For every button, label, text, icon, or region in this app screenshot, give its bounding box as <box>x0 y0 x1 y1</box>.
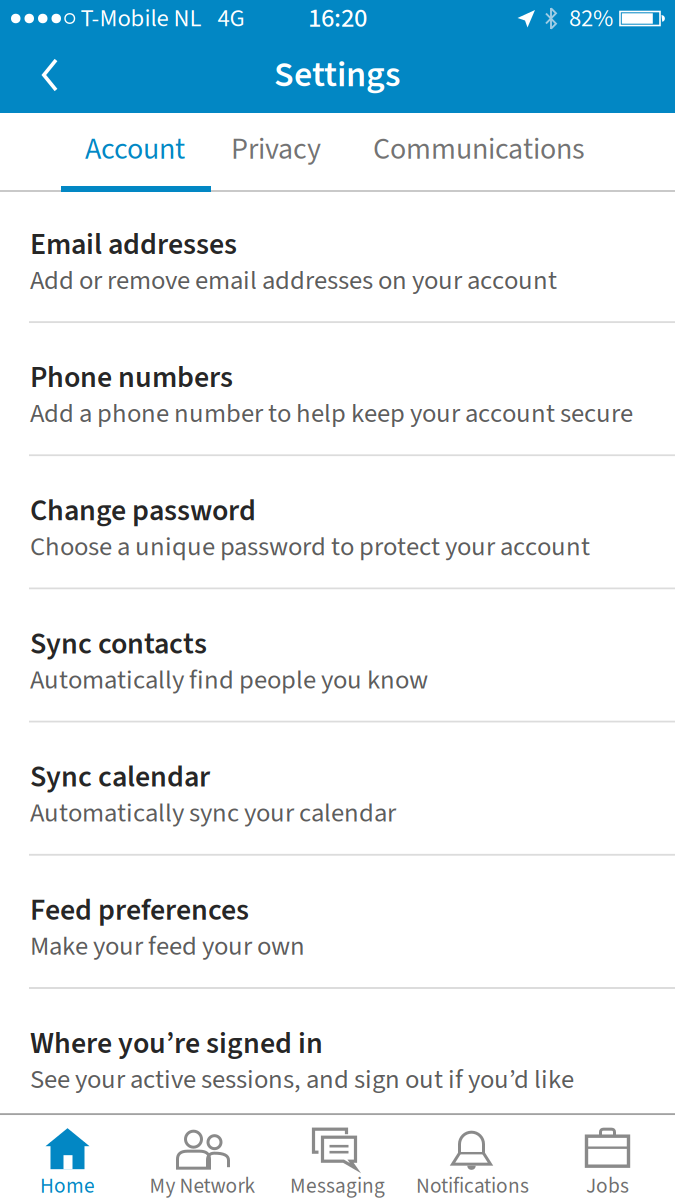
staticText: Messaging <box>290 1173 385 1199</box>
staticText: Where you’re signed in <box>30 1026 323 1061</box>
button[interactable]: Sync calendar <box>0 723 675 854</box>
button[interactable]: Feed preferences <box>0 856 675 987</box>
button[interactable]: Jobs <box>540 1127 675 1199</box>
button[interactable]: Phone numbers <box>0 323 675 454</box>
staticText: Add a phone number to help keep your acc… <box>30 398 633 429</box>
staticText: Email addresses <box>30 227 237 262</box>
button[interactable]: Sync contacts <box>0 589 675 721</box>
staticText: Feed preferences <box>30 893 249 928</box>
staticText: 82% <box>569 1 613 36</box>
button[interactable]: Account <box>0 128 185 171</box>
staticText: Sync contacts <box>30 626 207 661</box>
staticText: Settings <box>274 49 401 101</box>
staticText: Choose a unique password to protect your… <box>30 531 590 562</box>
staticText: Home <box>40 1173 95 1199</box>
button[interactable]: Email addresses <box>0 192 675 321</box>
staticText: Phone numbers <box>30 360 233 395</box>
button[interactable]: Messaging <box>270 1127 405 1199</box>
button[interactable]: My Network <box>135 1127 270 1199</box>
button[interactable]: Change password <box>0 456 675 587</box>
button[interactable]: Privacy <box>185 128 321 171</box>
staticText: Communications <box>373 128 585 171</box>
staticText: Automatically find people you know <box>30 664 428 696</box>
staticText: My Network <box>149 1173 255 1199</box>
button[interactable]: Notifications <box>405 1127 540 1199</box>
staticText: Jobs <box>586 1173 629 1199</box>
button[interactable]: Home <box>0 1127 135 1199</box>
staticText: See your active sessions, and sign out i… <box>30 1064 574 1095</box>
staticText: Make your feed your own <box>30 931 305 962</box>
staticText: Add or remove email addresses on your ac… <box>30 265 557 296</box>
button[interactable]: Back <box>0 38 58 112</box>
staticText: 16:20 <box>308 0 367 37</box>
staticText: Notifications <box>416 1173 529 1199</box>
staticText: Sync calendar <box>30 760 210 795</box>
staticText: Automatically sync your calendar <box>30 798 396 829</box>
staticText: 4G <box>217 1 244 36</box>
button[interactable]: Where you’re signed in <box>0 989 675 1095</box>
staticText: Account <box>85 128 185 171</box>
staticText: Privacy <box>231 128 321 171</box>
button[interactable]: Communications <box>321 128 585 171</box>
staticText: Change password <box>30 493 256 528</box>
staticText: T-Mobile NL <box>80 1 201 36</box>
